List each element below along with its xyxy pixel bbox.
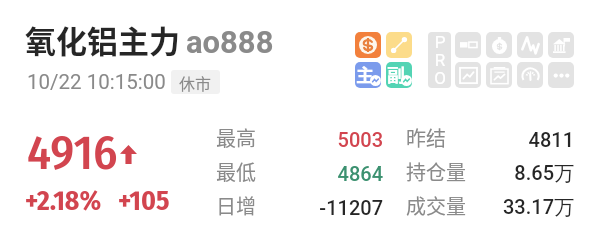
staticText: P R O [434,32,446,88]
staticText: 持仓量 [406,157,466,186]
button[interactable]: 成交量 [406,191,574,220]
button[interactable]: 日增 [216,191,383,220]
button[interactable]: Sub chart [386,62,412,88]
staticText: 氧化铝主力 [25,17,180,62]
button[interactable]: 昨结 [406,123,574,152]
button[interactable]: Funds [486,32,512,58]
staticText: +105 [118,184,170,217]
button[interactable]: Gauge [517,62,543,88]
staticText: 4811 [446,128,574,151]
staticText: 33.17万 [466,195,574,220]
button[interactable]: Notes [486,62,512,88]
button[interactable]: 休市 [171,70,220,94]
staticText: ao888 [186,24,274,60]
staticText: 5003 [256,128,383,151]
staticText: 休市 [179,71,212,94]
button[interactable]: Market analysis [548,32,574,58]
staticText: 最高 [216,123,256,152]
button[interactable]: Chart [455,62,481,88]
button[interactable]: 持仓量 [406,157,574,186]
staticText: 4864 [256,162,383,185]
button[interactable]: Trend line [386,32,412,58]
button[interactable]: 最高 [216,123,383,152]
staticText: 副 [387,62,405,87]
button[interactable]: Signal [517,32,543,58]
staticText: 最低 [216,157,256,186]
staticText: 成交量 [406,191,466,220]
staticText: -11207 [256,196,383,219]
button[interactable]: More [548,62,574,88]
staticText: 昨结 [406,123,446,152]
staticText: 日增 [216,191,256,220]
staticText: 主 [356,62,374,87]
staticText: 4916 [27,124,118,182]
button[interactable]: 最低 [216,157,383,186]
staticText: +2.18% [25,184,102,217]
staticText: 8.65万 [466,161,574,186]
staticText: 10/22 10:15:00 [27,70,166,94]
button[interactable]: Funds [355,32,381,58]
button[interactable]: Main chart [355,62,381,88]
button[interactable]: PRO [428,32,451,88]
button[interactable]: Layout [455,32,481,58]
